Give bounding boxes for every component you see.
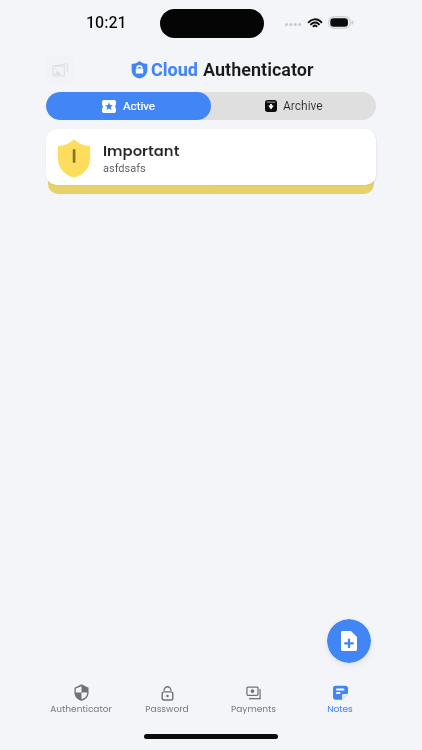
button[interactable]: Notes — [296, 684, 384, 716]
staticText: Authenticator — [203, 59, 314, 80]
staticText: Cloud — [151, 59, 198, 80]
staticText: Notes — [327, 703, 353, 716]
staticText: asfdsafs — [103, 162, 146, 175]
button[interactable]: New note — [327, 619, 371, 663]
button[interactable]: Active — [46, 92, 211, 120]
button[interactable]: Password — [123, 684, 211, 716]
button[interactable]: Important — [46, 129, 376, 185]
button[interactable]: Payments — [209, 684, 297, 716]
staticText: Password — [145, 703, 189, 716]
staticText: 10:21 — [86, 13, 127, 32]
staticText: Archive — [283, 99, 323, 113]
staticText: Active — [123, 99, 155, 113]
staticText: Important — [103, 140, 180, 161]
button[interactable]: Authenticator — [37, 684, 125, 716]
staticText: Authenticator — [50, 703, 112, 716]
button[interactable]: Image — [45, 55, 75, 85]
button[interactable]: Archive — [211, 92, 376, 120]
staticText: Payments — [231, 703, 276, 716]
